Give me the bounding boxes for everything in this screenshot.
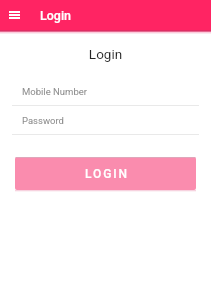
- staticText: Login: [0, 46, 211, 62]
- button[interactable]: Open navigation menu: [3, 4, 26, 27]
- button[interactable]: Mobile Number: [12, 82, 199, 106]
- staticText: LOGIN: [85, 167, 129, 181]
- button[interactable]: Password: [12, 111, 199, 135]
- staticText: Password: [22, 115, 64, 126]
- staticText: Mobile Number: [22, 86, 87, 97]
- staticText: Login: [40, 8, 72, 23]
- button[interactable]: LOGIN: [15, 157, 196, 190]
